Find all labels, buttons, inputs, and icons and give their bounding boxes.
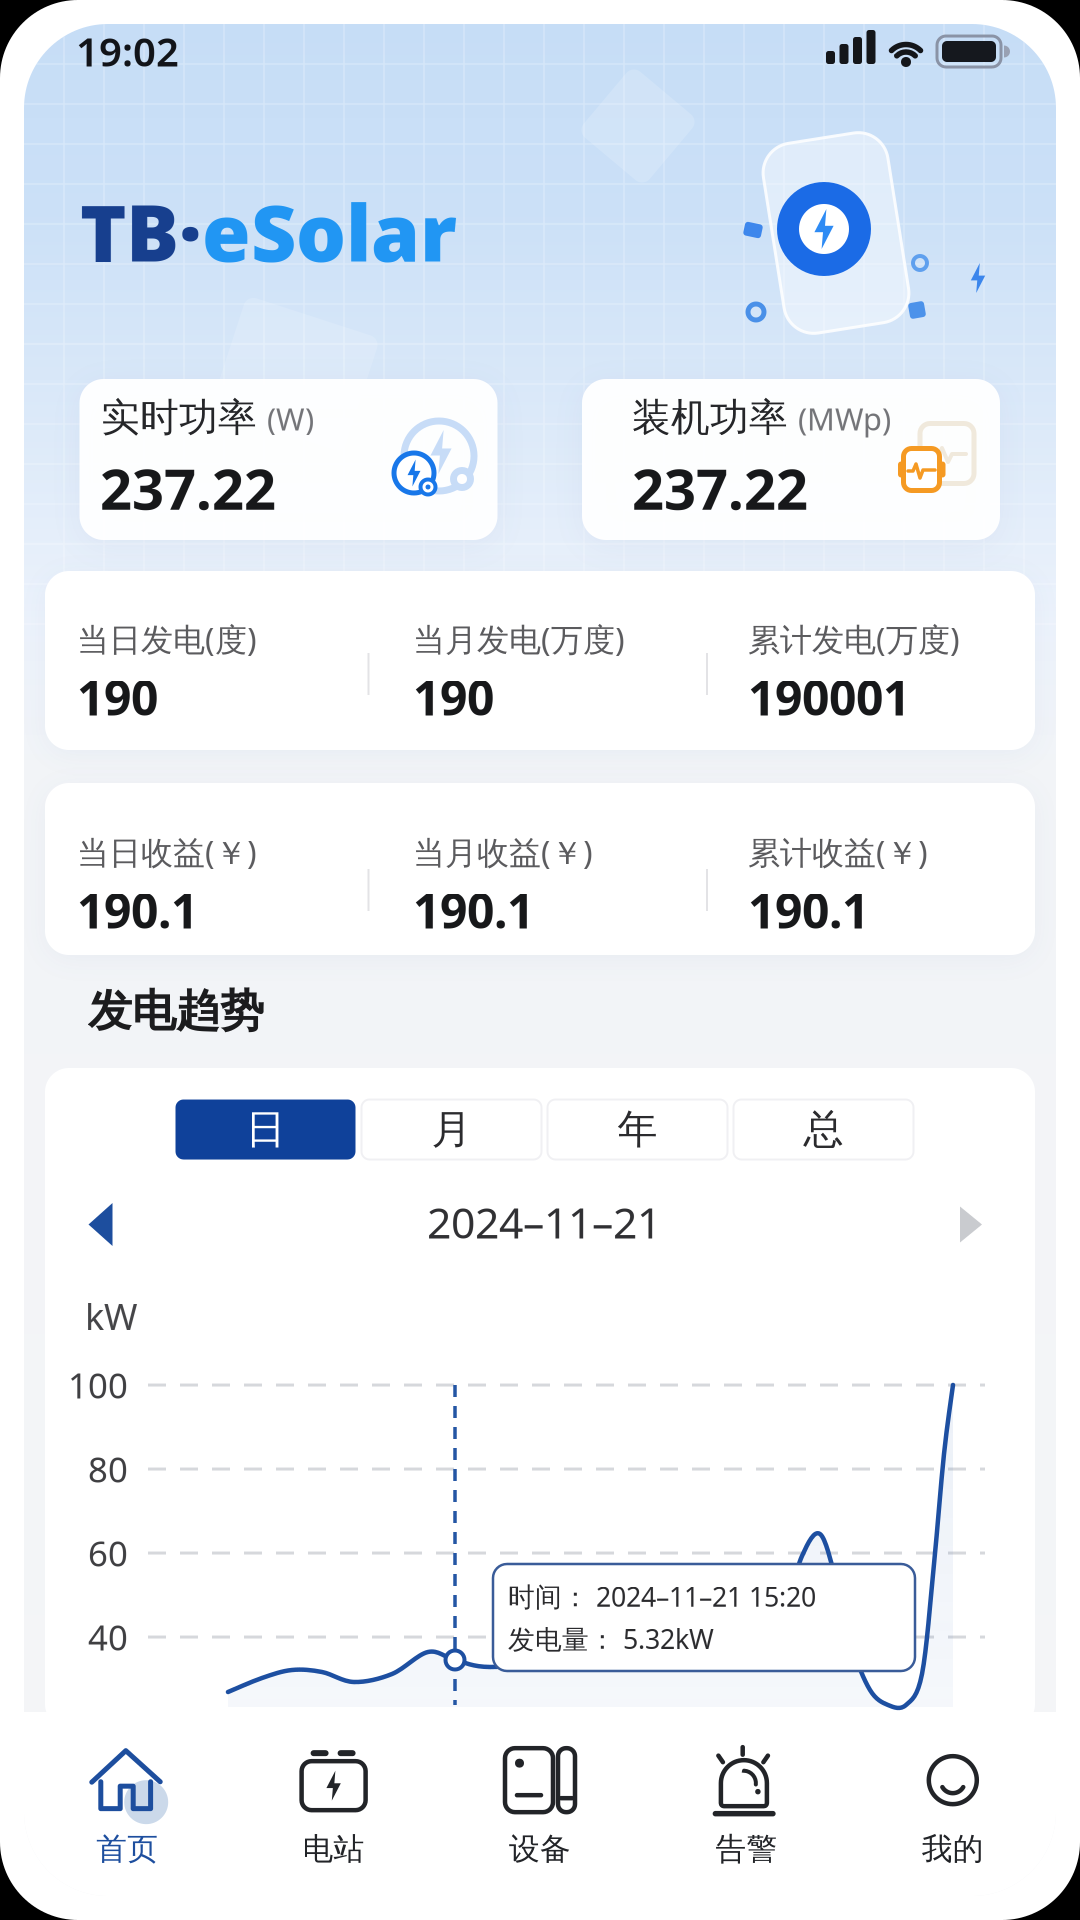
staticText: 当日发电(度) [77,618,257,660]
staticText: 2024–11–21 [427,1194,661,1250]
button[interactable]: 电站 [230,1712,437,1896]
button[interactable]: 我的 [850,1712,1056,1896]
staticText: 100 [68,1362,128,1408]
staticText: 首页 [96,1830,158,1868]
staticText: 时间： 2024–11–21 15:20 [508,1579,816,1614]
staticText: 总 [803,1105,843,1154]
button[interactable]: 日 [175,1099,355,1159]
staticText: 19:02 [76,24,179,77]
staticText: 实时功率 [101,394,257,441]
staticText: 237.22 [100,451,276,525]
staticText: 40 [88,1614,128,1660]
staticText: 190 [413,665,494,729]
button[interactable]: Next day [959,1205,983,1243]
button[interactable]: 总 [733,1099,913,1159]
staticText: 装机功率 [632,394,788,441]
staticText: 月 [431,1105,471,1154]
staticText: TB· [80,179,202,283]
staticText: 80 [88,1446,128,1492]
staticText: 发电趋势 [88,984,264,1038]
staticText: 年 [617,1105,657,1154]
button[interactable]: Previous day [87,1202,113,1247]
staticText: 237.22 [632,451,808,525]
staticText: 电站 [303,1830,365,1868]
button[interactable]: 设备 [437,1712,643,1896]
staticText: 累计收益(￥) [748,831,928,873]
staticText: 190 [77,665,158,729]
button[interactable]: 告警 [643,1712,850,1896]
staticText: 累计发电(万度) [748,618,960,660]
staticText: (W) [267,398,314,439]
staticText: 190.1 [748,878,869,942]
staticText: 发电量： 5.32kW [508,1621,714,1656]
staticText: kW [85,1292,137,1340]
staticText: 60 [88,1530,128,1576]
staticText: 190001 [748,665,910,729]
staticText: 190.1 [413,878,534,942]
button[interactable]: 年 [547,1099,727,1159]
staticText: eSolar [202,179,457,283]
staticText: 当日收益(￥) [77,831,257,873]
staticText: 当月收益(￥) [413,831,593,873]
staticText: (MWp) [798,398,891,439]
staticText: 日 [245,1105,285,1154]
button[interactable]: 首页 [24,1712,230,1896]
staticText: 当月发电(万度) [413,618,625,660]
button[interactable]: 月 [361,1099,541,1159]
staticText: 告警 [715,1830,777,1868]
staticText: 我的 [922,1830,984,1868]
staticText: 设备 [509,1830,571,1868]
staticText: 190.1 [77,878,198,942]
